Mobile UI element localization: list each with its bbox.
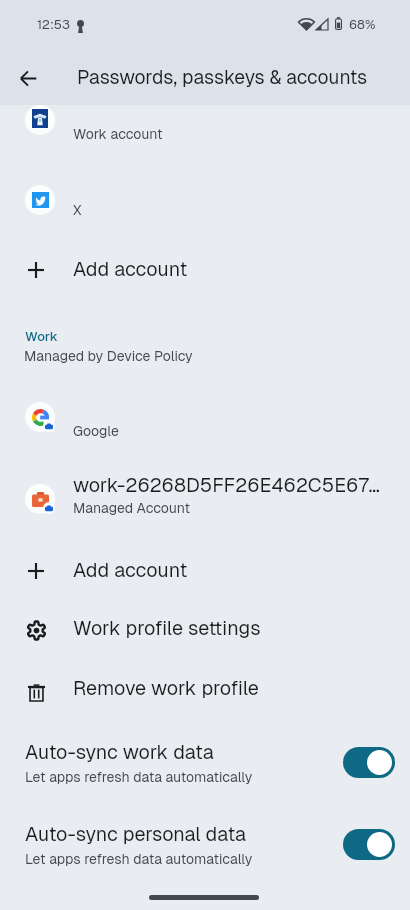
button[interactable]: Add account [0, 549, 410, 593]
button[interactable]: Back [11, 61, 45, 95]
staticText: 68% [349, 16, 376, 33]
button[interactable]: Auto-sync work data [343, 747, 395, 778]
staticText: Managed by Device Policy [24, 347, 193, 365]
staticText: Managed Account [73, 499, 191, 517]
staticText: work-26268D5FF26E462C5E6703D2 [73, 472, 387, 498]
staticText: Work [25, 328, 58, 345]
staticText: 12:53 [37, 16, 70, 33]
staticText: X [73, 201, 82, 219]
button[interactable]: Auto-sync personal data [343, 829, 395, 860]
button[interactable]: Add account [0, 248, 410, 292]
staticText: Let apps refresh data automatically [25, 850, 253, 868]
staticText: Let apps refresh data automatically [25, 768, 253, 786]
button[interactable]: Work profile settings [0, 608, 410, 652]
staticText: Remove work profile [73, 675, 259, 701]
button[interactable]: Remove work profile [0, 670, 410, 714]
staticText: Add account [73, 256, 188, 282]
staticText: Google [73, 422, 119, 440]
staticText: Passwords, passkeys & accounts [77, 65, 368, 90]
button[interactable]: work-26268D5FF26E462C5E6703D2 [73, 472, 387, 498]
staticText: Auto-sync work data [25, 739, 214, 765]
button[interactable]: Auto-sync personal data [0, 816, 410, 866]
staticText: Auto-sync personal data [25, 821, 246, 847]
staticText: Work account [73, 125, 163, 143]
staticText: Work profile settings [73, 615, 261, 641]
button[interactable]: Auto-sync work data [0, 734, 410, 784]
staticText: Add account [73, 557, 188, 583]
